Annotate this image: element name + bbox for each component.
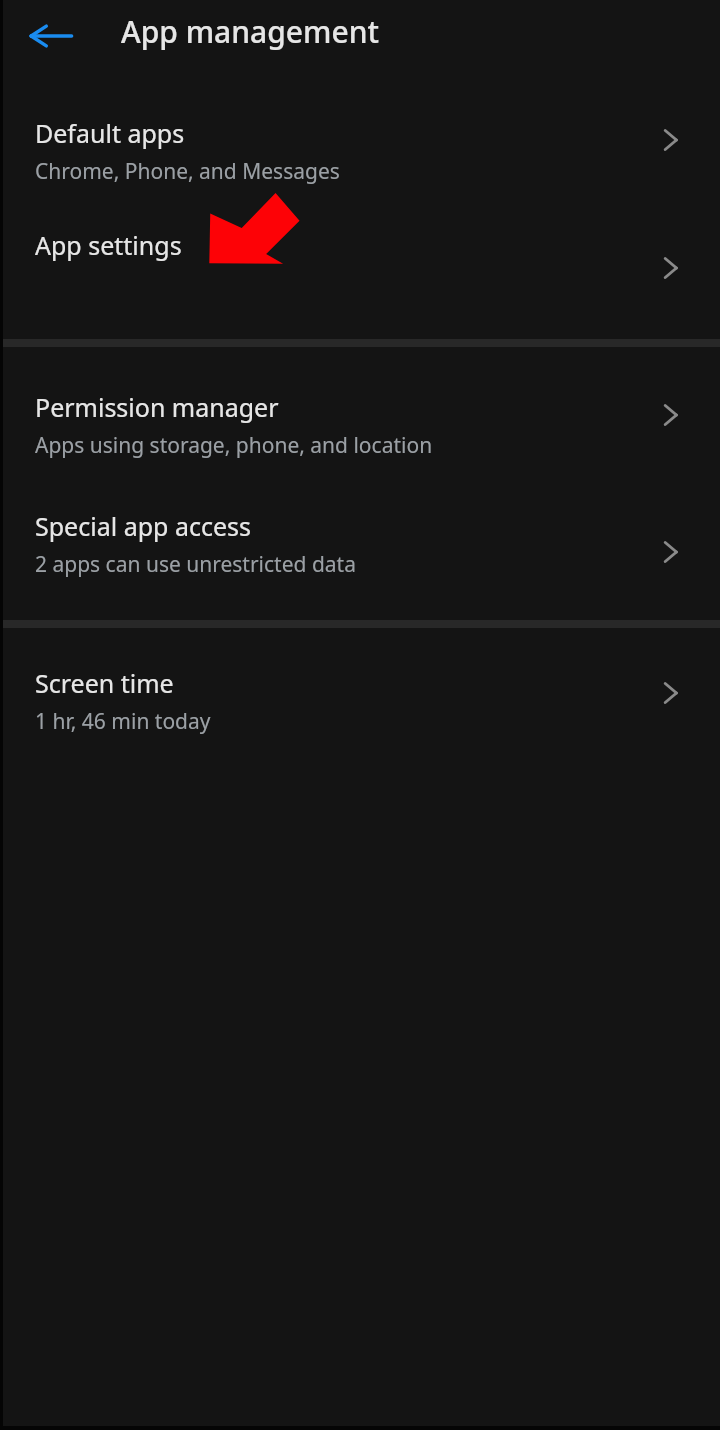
- button[interactable]: Screen time: [3, 628, 720, 758]
- button[interactable]: Default apps: [3, 84, 720, 196]
- staticText: Chrome, Phone, and Messages: [35, 157, 340, 186]
- button[interactable]: Special app access: [3, 483, 720, 620]
- staticText: Apps using storage, phone, and location: [35, 431, 433, 460]
- button[interactable]: App settings: [3, 196, 720, 339]
- staticText: Permission manager: [35, 390, 279, 424]
- staticText: 2 apps can use unrestricted data: [35, 550, 356, 579]
- staticText: 1 hr, 46 min today: [35, 707, 211, 736]
- staticText: Default apps: [35, 116, 185, 150]
- staticText: Special app access: [35, 509, 251, 543]
- staticText: Screen time: [35, 666, 174, 700]
- staticText: App settings: [35, 228, 182, 262]
- button[interactable]: Permission manager: [3, 347, 720, 483]
- staticText: App management: [121, 11, 379, 52]
- button[interactable]: Back: [20, 6, 80, 66]
